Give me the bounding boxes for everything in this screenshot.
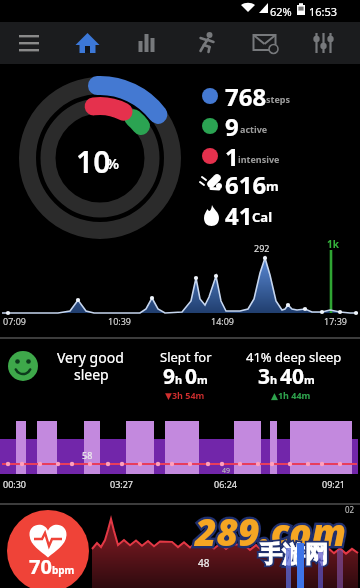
staticText: 616 xyxy=(225,168,267,201)
staticText: 58 xyxy=(82,449,93,461)
staticText: 48 xyxy=(198,556,210,570)
button[interactable] xyxy=(58,22,117,64)
button[interactable] xyxy=(117,22,176,64)
staticText: 49 xyxy=(222,466,231,476)
staticText: ▼3h 54m xyxy=(165,389,205,401)
staticText: 09:21 xyxy=(322,478,346,490)
button[interactable] xyxy=(176,22,235,64)
staticText: steps xyxy=(266,93,291,105)
staticText: 9h 0m xyxy=(163,362,208,391)
staticText: intensive xyxy=(238,153,280,165)
staticText: Slept for xyxy=(160,348,212,366)
staticText: 手游网 xyxy=(259,540,328,569)
staticText: 手游网 xyxy=(259,540,328,569)
staticText: 70bpm xyxy=(29,553,75,580)
staticText: 14:09 xyxy=(211,315,235,327)
staticText: 292 xyxy=(254,242,270,254)
staticText: 07:09 xyxy=(3,315,27,327)
staticText: 768 xyxy=(225,80,267,113)
staticText: sleep xyxy=(74,365,109,384)
staticText: 3h 40m xyxy=(258,362,315,391)
button[interactable] xyxy=(0,22,58,64)
staticText: 00:30 xyxy=(3,478,27,490)
staticText: 03:27 xyxy=(110,478,134,490)
staticText: 16:53 xyxy=(309,4,338,19)
staticText: 62% xyxy=(270,4,292,19)
staticText: 10:39 xyxy=(108,315,132,327)
staticText: m xyxy=(266,177,279,195)
staticText: 289.com xyxy=(195,506,347,556)
staticText: active xyxy=(240,123,268,135)
staticText: 1 xyxy=(225,140,239,173)
staticText: 10 xyxy=(76,141,111,182)
button[interactable] xyxy=(235,22,294,64)
staticText: 06:24 xyxy=(214,478,238,490)
staticText: 02 xyxy=(345,504,355,515)
staticText: 9 xyxy=(225,110,239,143)
staticText: 17:39 xyxy=(324,315,348,327)
staticText: % xyxy=(106,153,120,173)
staticText: Cal xyxy=(252,208,273,226)
staticText: 1k xyxy=(327,237,339,251)
staticText: 41 xyxy=(225,199,253,232)
button[interactable] xyxy=(294,22,353,64)
staticText: ▲1h 44m xyxy=(271,389,311,401)
staticText: Very good xyxy=(57,348,124,367)
button[interactable]: 70bpm xyxy=(7,510,89,588)
staticText: 289.com xyxy=(195,506,347,556)
staticText: 41% deep sleep xyxy=(246,348,342,366)
